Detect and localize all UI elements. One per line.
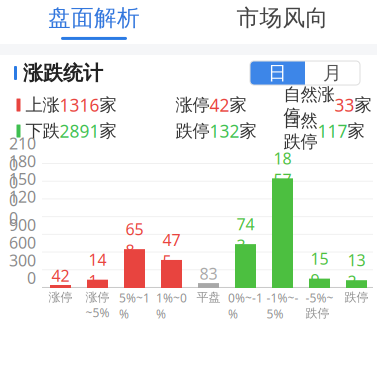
- button[interactable]: 市场风向: [188, 0, 377, 44]
- button[interactable]: 月: [305, 61, 360, 85]
- staticText: 平盘: [196, 290, 220, 305]
- staticText: 1316: [59, 93, 99, 116]
- staticText: 下跌: [25, 120, 59, 142]
- staticText: 涨停~5%: [85, 290, 109, 321]
- staticText: 自然跌停: [283, 110, 317, 152]
- staticText: 141: [88, 249, 106, 291]
- staticText: 家: [99, 94, 116, 116]
- staticText: 900: [9, 214, 36, 235]
- staticText: -1%~-5%: [266, 290, 298, 322]
- staticText: 涨停: [48, 290, 72, 305]
- staticText: -5%~跌停: [305, 290, 333, 321]
- staticText: 132: [347, 249, 365, 292]
- staticText: 盘面解析: [48, 4, 140, 32]
- staticText: 2891: [59, 119, 99, 142]
- staticText: 日: [268, 61, 287, 84]
- staticText: 117: [317, 119, 347, 142]
- staticText: 2100: [9, 133, 36, 175]
- staticText: 33: [334, 93, 354, 116]
- staticText: 1500: [9, 168, 36, 211]
- staticText: 家: [229, 94, 246, 116]
- staticText: 跌停: [175, 120, 209, 142]
- staticText: 上涨: [25, 94, 59, 116]
- staticText: 自然涨停: [283, 84, 334, 126]
- staticText: 涨停: [175, 94, 209, 116]
- staticText: 市场风向: [236, 4, 328, 32]
- staticText: 159: [310, 248, 328, 290]
- staticText: 300: [9, 250, 36, 271]
- staticText: 1%~0%: [156, 290, 187, 322]
- staticText: 42: [51, 265, 69, 286]
- staticText: 1857: [273, 148, 291, 190]
- staticText: 家: [354, 94, 371, 116]
- button[interactable]: 盘面解析: [0, 0, 188, 44]
- staticText: 1200: [9, 186, 36, 228]
- staticText: 132: [209, 119, 239, 142]
- staticText: 家: [239, 120, 256, 142]
- staticText: 743: [236, 213, 254, 256]
- staticText: 600: [9, 232, 36, 253]
- staticText: 658: [125, 218, 143, 261]
- staticText: 月: [323, 61, 342, 84]
- staticText: 涨跌统计: [23, 61, 103, 85]
- staticText: 42: [209, 93, 229, 116]
- staticText: 家: [99, 120, 116, 142]
- staticText: 475: [162, 229, 180, 272]
- staticText: 5%~1%: [119, 290, 150, 322]
- staticText: 0: [27, 267, 36, 288]
- staticText: 跌停: [344, 290, 368, 305]
- staticText: 0%~-1%: [228, 290, 263, 322]
- staticText: 83: [199, 263, 217, 284]
- staticText: 家: [347, 120, 364, 142]
- staticText: 1800: [9, 150, 36, 193]
- button[interactable]: 日: [250, 61, 305, 85]
